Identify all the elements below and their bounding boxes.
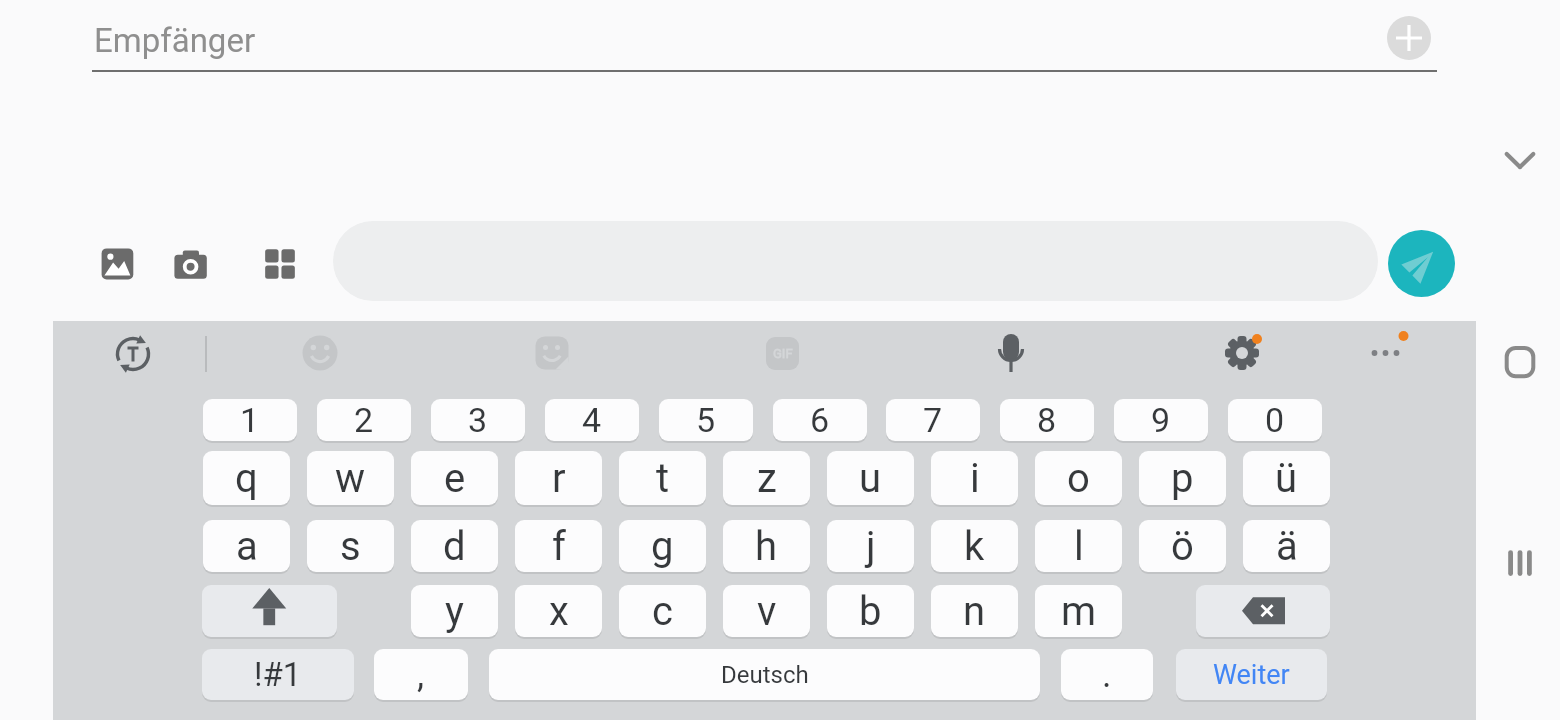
button[interactable]: o bbox=[1035, 451, 1122, 505]
staticText: q bbox=[235, 455, 258, 502]
staticText: r bbox=[552, 455, 566, 502]
staticText: c bbox=[652, 588, 673, 635]
button[interactable]: y bbox=[411, 585, 498, 637]
button[interactable]: c bbox=[619, 585, 706, 637]
staticText: 7 bbox=[923, 400, 943, 440]
button[interactable]: b bbox=[827, 585, 914, 637]
button[interactable]: g bbox=[619, 520, 706, 572]
button[interactable] bbox=[1492, 133, 1548, 189]
staticText: j bbox=[866, 523, 876, 570]
staticText: 4 bbox=[582, 400, 602, 440]
button[interactable]: GIF bbox=[766, 337, 799, 370]
button[interactable] bbox=[91, 238, 143, 290]
button[interactable]: k bbox=[931, 520, 1018, 572]
staticText: !#1 bbox=[254, 655, 302, 694]
button[interactable]: ü bbox=[1243, 451, 1330, 505]
button[interactable]: i bbox=[931, 451, 1018, 505]
staticText: y bbox=[445, 588, 464, 635]
button[interactable]: 0 bbox=[1228, 399, 1322, 441]
button[interactable]: u bbox=[827, 451, 914, 505]
button[interactable]: 3 bbox=[431, 399, 525, 441]
staticText: Weiter bbox=[1213, 659, 1290, 691]
staticText: d bbox=[443, 523, 466, 570]
button[interactable]: a bbox=[203, 520, 290, 572]
button[interactable]: 6 bbox=[773, 399, 867, 441]
staticText: p bbox=[1171, 455, 1194, 502]
button[interactable]: v bbox=[723, 585, 810, 637]
button[interactable]: , bbox=[374, 649, 468, 700]
button[interactable]: 7 bbox=[886, 399, 980, 441]
button[interactable]: ö bbox=[1139, 520, 1226, 572]
button[interactable]: n bbox=[931, 585, 1018, 637]
staticText: u bbox=[859, 455, 882, 502]
button[interactable]: m bbox=[1035, 585, 1122, 637]
button[interactable]: p bbox=[1139, 451, 1226, 505]
staticText: GIF bbox=[773, 346, 793, 361]
button[interactable] bbox=[1214, 325, 1270, 381]
button[interactable] bbox=[173, 238, 225, 290]
button[interactable]: z bbox=[723, 451, 810, 505]
button[interactable] bbox=[1196, 585, 1330, 637]
staticText: 9 bbox=[1151, 400, 1171, 440]
staticText: w bbox=[335, 455, 366, 502]
button[interactable] bbox=[202, 585, 337, 637]
button[interactable]: r bbox=[515, 451, 602, 505]
staticText: b bbox=[859, 588, 882, 635]
button[interactable]: w bbox=[307, 451, 394, 505]
staticText: t bbox=[656, 455, 670, 502]
button[interactable]: q bbox=[203, 451, 290, 505]
button[interactable]: 5 bbox=[659, 399, 753, 441]
staticText: 6 bbox=[810, 400, 830, 440]
staticText: l bbox=[1074, 523, 1084, 570]
staticText: ö bbox=[1171, 523, 1194, 570]
staticText: 1 bbox=[240, 400, 260, 440]
staticText: i bbox=[970, 455, 980, 502]
button[interactable]: Empfänger bbox=[92, 8, 1437, 72]
staticText: v bbox=[757, 588, 777, 635]
button[interactable]: d bbox=[411, 520, 498, 572]
staticText: 2 bbox=[354, 400, 374, 440]
button[interactable]: !#1 bbox=[202, 649, 354, 700]
staticText: 8 bbox=[1037, 400, 1057, 440]
button[interactable] bbox=[1492, 334, 1548, 390]
staticText: 3 bbox=[468, 400, 488, 440]
button[interactable]: 2 bbox=[317, 399, 411, 441]
button[interactable] bbox=[985, 327, 1037, 379]
staticText: x bbox=[549, 588, 569, 635]
staticText: 0 bbox=[1265, 400, 1285, 440]
staticText: Empfänger bbox=[94, 21, 256, 60]
staticText: m bbox=[1061, 588, 1097, 635]
button[interactable]: 1 bbox=[203, 399, 297, 441]
button[interactable]: x bbox=[515, 585, 602, 637]
staticText: , bbox=[417, 654, 425, 696]
button[interactable] bbox=[294, 327, 346, 379]
button[interactable] bbox=[1387, 16, 1431, 60]
button[interactable]: Weiter bbox=[1176, 649, 1327, 700]
button[interactable] bbox=[526, 327, 578, 379]
button[interactable]: e bbox=[411, 451, 498, 505]
button[interactable]: t bbox=[619, 451, 706, 505]
button[interactable] bbox=[254, 238, 306, 290]
button[interactable] bbox=[1388, 230, 1455, 297]
button[interactable]: f bbox=[515, 520, 602, 572]
staticText: z bbox=[757, 455, 777, 502]
button[interactable]: s bbox=[307, 520, 394, 572]
button[interactable] bbox=[1492, 535, 1548, 591]
button[interactable] bbox=[107, 328, 159, 380]
staticText: f bbox=[552, 523, 566, 570]
button[interactable]: h bbox=[723, 520, 810, 572]
button[interactable]: l bbox=[1035, 520, 1122, 572]
staticText: n bbox=[963, 588, 986, 635]
button[interactable]: 8 bbox=[1000, 399, 1094, 441]
staticText: 5 bbox=[696, 400, 716, 440]
button[interactable]: . bbox=[1061, 649, 1153, 700]
button[interactable]: j bbox=[827, 520, 914, 572]
button[interactable]: ä bbox=[1243, 520, 1330, 572]
button[interactable] bbox=[1360, 325, 1416, 381]
button[interactable]: 4 bbox=[545, 399, 639, 441]
staticText: e bbox=[444, 455, 466, 502]
button[interactable]: Deutsch bbox=[489, 649, 1040, 700]
staticText: g bbox=[651, 523, 674, 570]
button[interactable]: 9 bbox=[1114, 399, 1208, 441]
